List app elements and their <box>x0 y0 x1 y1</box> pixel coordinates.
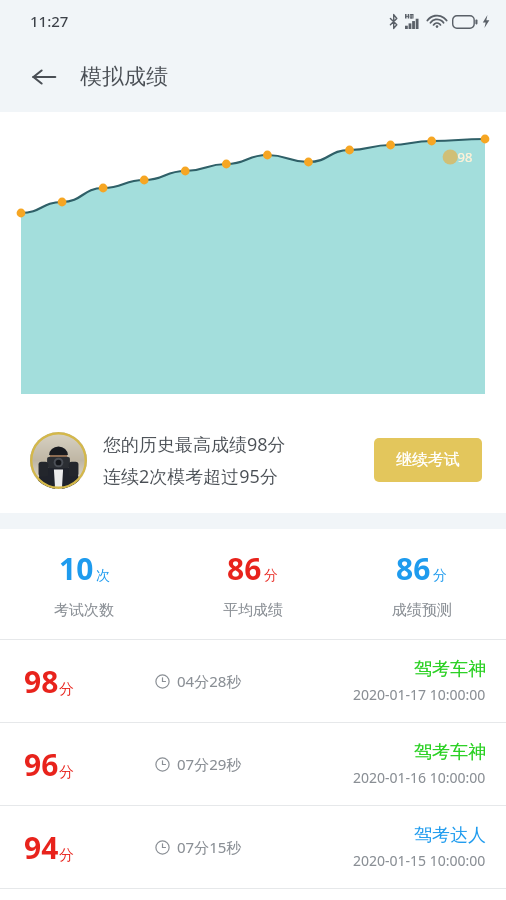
staticText: 94 <box>24 827 59 868</box>
button[interactable]: 94 <box>0 806 506 888</box>
staticText: 11:27 <box>30 11 69 31</box>
staticText: 04分28秒 <box>177 671 242 691</box>
staticText: 分 <box>59 846 74 865</box>
staticText: 86 <box>227 548 262 589</box>
staticText: 驾考车神 <box>414 658 486 681</box>
staticText: 考试次数 <box>54 601 114 620</box>
staticText: 2020-01-15 10:00:00 <box>353 851 486 870</box>
staticText: 07分15秒 <box>177 837 242 857</box>
staticText: 成绩预测 <box>392 601 452 620</box>
button[interactable]: 98 <box>0 640 506 722</box>
button[interactable]: 10 <box>0 548 168 620</box>
staticText: 98 <box>449 148 481 166</box>
staticText: 10 <box>59 548 94 589</box>
staticText: 您的历史最高成绩98分 <box>103 432 286 457</box>
staticText: 驾考车神 <box>414 741 486 764</box>
button[interactable]: Back <box>22 55 66 99</box>
staticText: 模拟成绩 <box>80 63 168 91</box>
staticText: 07分29秒 <box>177 754 242 774</box>
staticText: 98 <box>24 661 59 702</box>
staticText: 2020-01-16 10:00:00 <box>353 768 486 787</box>
staticText: 分 <box>264 567 278 585</box>
staticText: 驾考达人 <box>414 824 486 847</box>
staticText: 分 <box>59 680 74 699</box>
staticText: 分 <box>59 763 74 782</box>
staticText: 分 <box>433 567 447 585</box>
button[interactable]: 继续考试 <box>374 438 482 482</box>
staticText: 96 <box>24 744 59 785</box>
button[interactable]: Profile photo <box>30 432 87 489</box>
button[interactable]: 96 <box>0 723 506 805</box>
staticText: 86 <box>396 548 431 589</box>
button[interactable]: 86 <box>168 548 337 620</box>
button[interactable]: 86 <box>337 548 506 620</box>
staticText: 平均成绩 <box>223 601 283 620</box>
staticText: 2020-01-17 10:00:00 <box>353 685 486 704</box>
staticText: 连续2次模考超过95分 <box>103 464 278 489</box>
staticText: 次 <box>96 567 110 585</box>
staticText: 继续考试 <box>396 450 460 470</box>
